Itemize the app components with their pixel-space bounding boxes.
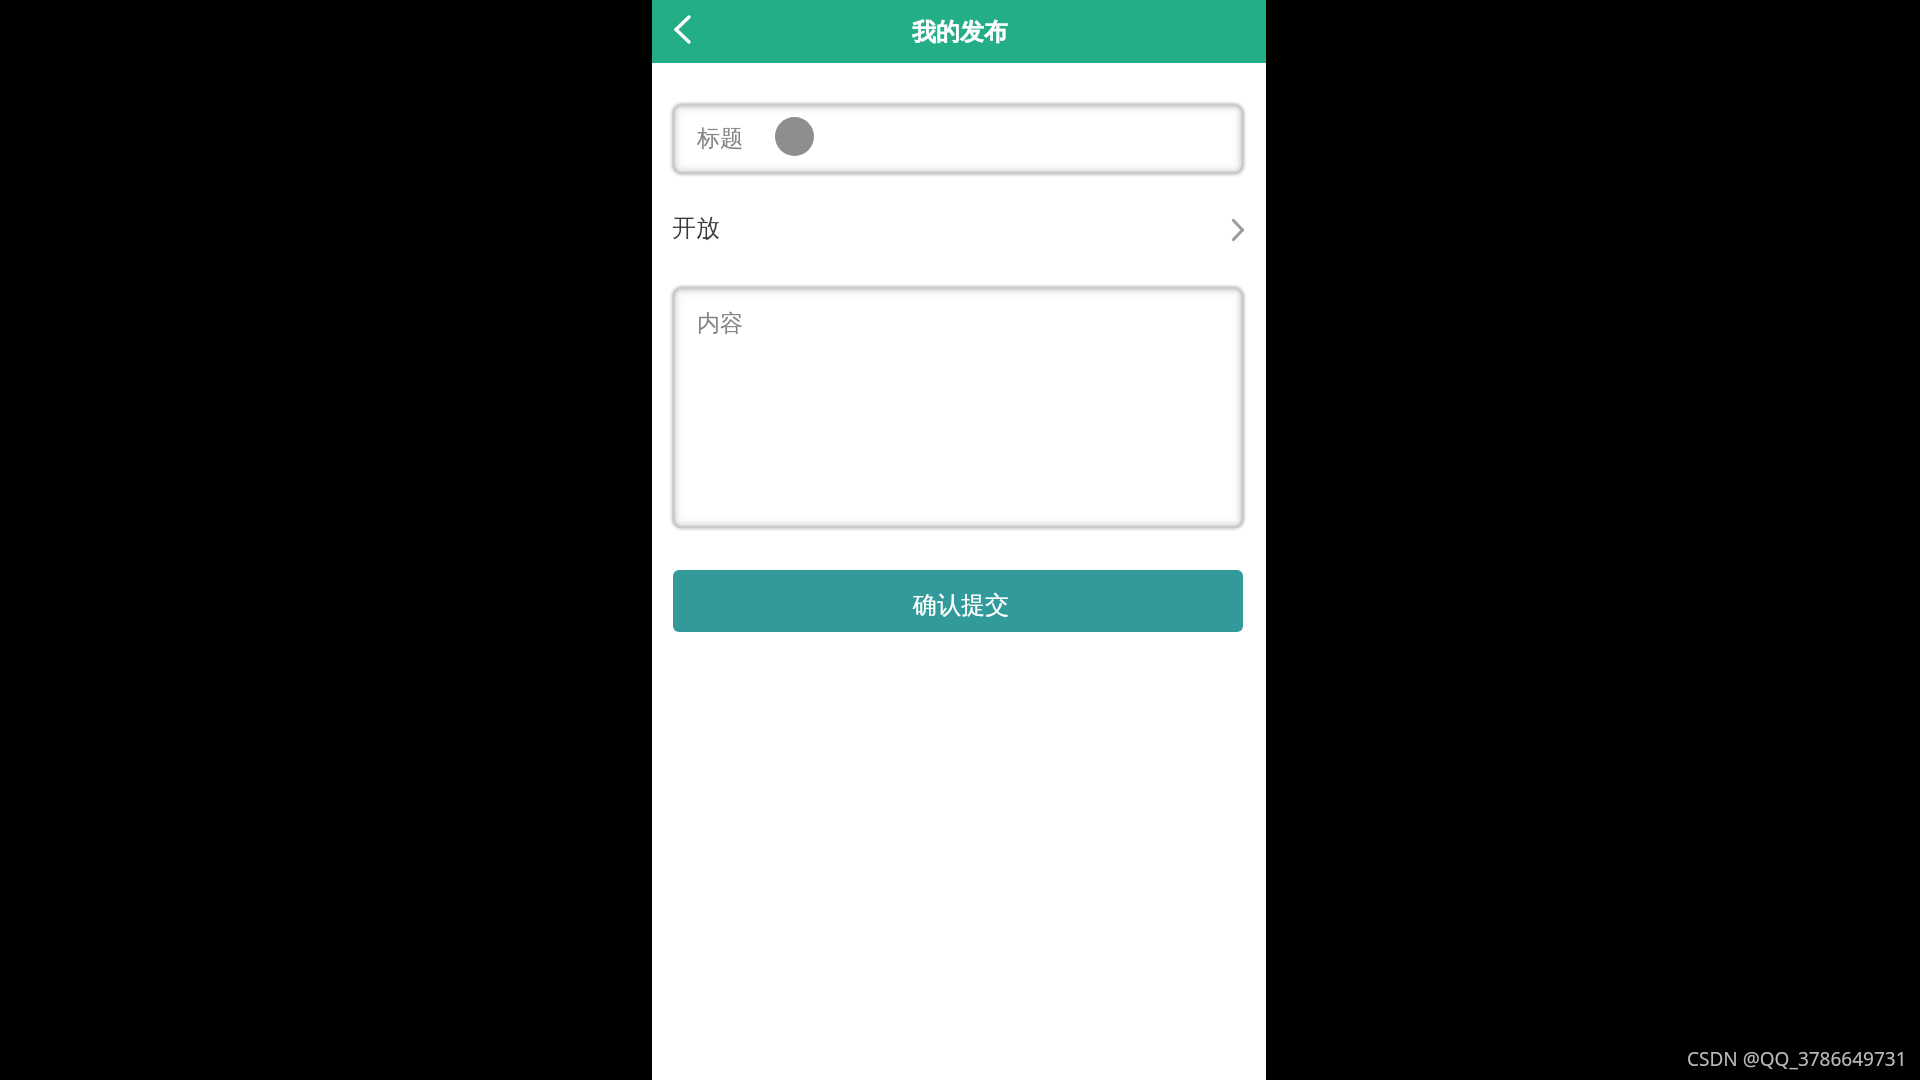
button[interactable]: 标题 bbox=[673, 104, 1243, 173]
button[interactable]: 确认提交 bbox=[673, 570, 1243, 632]
staticText: 我的发布 bbox=[912, 17, 1008, 47]
button[interactable]: 开放 bbox=[652, 195, 1266, 263]
button[interactable]: Back bbox=[660, 6, 712, 58]
staticText: 内容 bbox=[697, 309, 743, 338]
staticText: 确认提交 bbox=[913, 590, 1009, 620]
staticText: 开放 bbox=[672, 213, 720, 243]
staticText: CSDN @QQ_3786649731 bbox=[1687, 1046, 1907, 1072]
button[interactable]: 内容 bbox=[673, 287, 1243, 527]
staticText: 标题 bbox=[697, 124, 743, 153]
